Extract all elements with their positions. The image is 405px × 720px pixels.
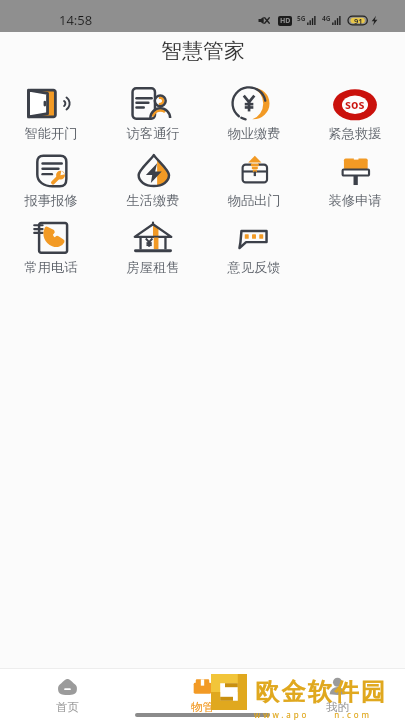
staticText: 智慧管家 xyxy=(161,38,245,64)
staticText: 物品出门 xyxy=(227,192,281,209)
staticText: 生活缴费 xyxy=(126,192,180,209)
staticText: 智能开门 xyxy=(24,125,78,142)
button[interactable]: 装修申请 xyxy=(304,154,405,221)
button[interactable]: 智能开门 xyxy=(0,87,102,154)
staticText: 91 xyxy=(354,16,363,26)
button[interactable]: 常用电话 xyxy=(0,221,102,288)
staticText: 我的 xyxy=(326,700,349,714)
staticText: sos xyxy=(345,96,365,112)
staticText: HD xyxy=(280,16,291,26)
staticText: 物管 xyxy=(191,700,214,714)
staticText: 物业缴费 xyxy=(227,125,281,142)
staticText: 紧急救援 xyxy=(328,125,382,142)
button[interactable]: 物管 xyxy=(135,669,270,720)
staticText: 首页 xyxy=(56,700,79,714)
staticText: 意见反馈 xyxy=(227,259,281,276)
staticText: 常用电话 xyxy=(24,259,78,276)
button[interactable]: 意见反馈 xyxy=(203,221,304,288)
button[interactable]: 物品出门 xyxy=(203,154,304,221)
button[interactable]: 房屋租售 xyxy=(102,221,203,288)
button[interactable]: 首页 xyxy=(0,669,135,720)
staticText: 4G xyxy=(322,14,331,23)
staticText: 14:58 xyxy=(59,11,93,29)
staticText: 欧金软件园 xyxy=(254,677,386,707)
button[interactable]: 我的 xyxy=(270,669,405,720)
staticText: 访客通行 xyxy=(126,125,180,142)
button[interactable]: 报事报修 xyxy=(0,154,102,221)
button[interactable]: 访客通行 xyxy=(102,87,203,154)
staticText: 5G xyxy=(297,14,306,23)
staticText: www.apo n.com xyxy=(254,709,372,720)
button[interactable]: 物业缴费 xyxy=(203,87,304,154)
staticText: 房屋租售 xyxy=(126,259,180,276)
staticText: 装修申请 xyxy=(328,192,382,209)
staticText: 报事报修 xyxy=(24,192,78,209)
button[interactable]: 生活缴费 xyxy=(102,154,203,221)
button[interactable]: sos xyxy=(304,87,405,154)
